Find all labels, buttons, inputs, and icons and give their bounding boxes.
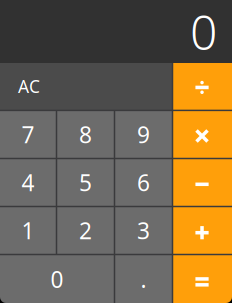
staticText: 5 (79, 167, 92, 197)
staticText: 2 (79, 215, 92, 245)
staticText: 6 (137, 167, 150, 197)
button[interactable]: Add (173, 207, 232, 254)
staticText: 0 (190, 0, 217, 63)
button[interactable]: 7 (0, 111, 56, 158)
button[interactable]: 5 (57, 159, 114, 206)
button[interactable]: 4 (0, 159, 56, 206)
button[interactable]: 3 (115, 207, 172, 254)
button[interactable]: 2 (57, 207, 114, 254)
staticText: 4 (21, 167, 34, 197)
button[interactable]: Equals (173, 255, 232, 303)
staticText: . (140, 264, 146, 294)
staticText: 3 (137, 215, 150, 245)
staticText: 8 (79, 119, 92, 149)
button[interactable]: 8 (57, 111, 114, 158)
button[interactable]: 6 (115, 159, 172, 206)
button[interactable]: Divide (173, 63, 232, 110)
button[interactable]: All clear (0, 63, 172, 110)
button[interactable]: Multiply (173, 111, 232, 158)
staticText: 9 (137, 119, 150, 149)
staticText: AC (18, 75, 40, 98)
button[interactable]: . (115, 255, 172, 303)
button[interactable]: 9 (115, 111, 172, 158)
button[interactable]: Subtract (173, 159, 232, 206)
staticText: 1 (21, 215, 34, 245)
staticText: 0 (50, 264, 63, 294)
button[interactable]: 0 (0, 255, 114, 303)
staticText: 7 (21, 119, 34, 149)
button[interactable]: 1 (0, 207, 56, 254)
